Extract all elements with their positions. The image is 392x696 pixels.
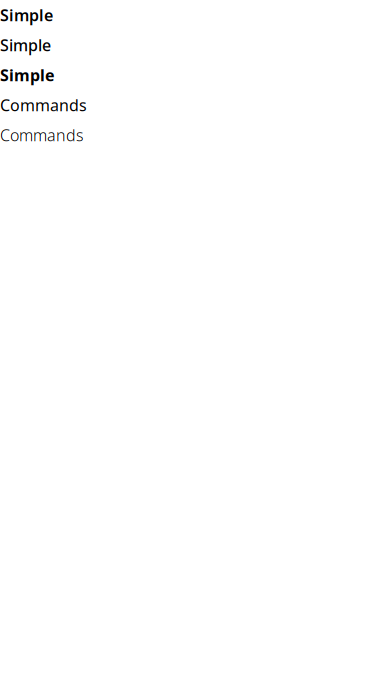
staticText: Simple bbox=[0, 4, 53, 26]
staticText: Commands bbox=[0, 124, 84, 146]
staticText: Simple bbox=[0, 64, 55, 86]
staticText: Simple bbox=[0, 34, 51, 56]
staticText: Commands bbox=[0, 94, 87, 116]
